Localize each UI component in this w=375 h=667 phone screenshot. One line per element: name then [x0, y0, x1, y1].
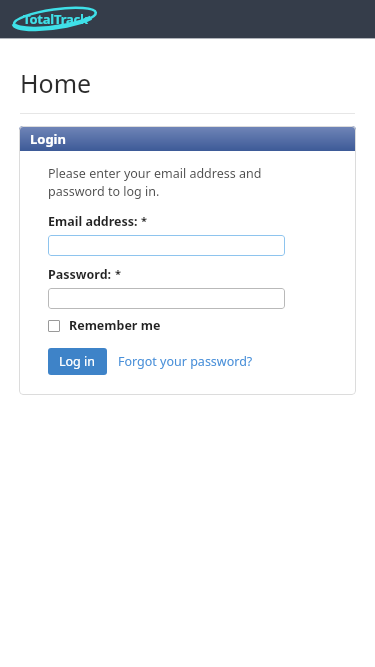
staticText: Home	[20, 66, 92, 100]
staticText: TotalTrack	[23, 10, 88, 28]
staticText: *	[141, 213, 147, 228]
staticText: Password:	[48, 266, 112, 283]
staticText: Remember me	[69, 317, 161, 334]
button[interactable]: TotalTrack home	[12, 3, 98, 35]
button[interactable]: Email address input	[48, 235, 285, 256]
button[interactable]: Log in	[48, 348, 107, 375]
staticText: Forgot your password?	[118, 353, 253, 370]
button[interactable]: Forgot your password?	[118, 349, 253, 374]
button[interactable]: Password input	[48, 288, 285, 309]
staticText: Login	[30, 130, 66, 148]
staticText: Email address:	[48, 213, 138, 230]
button[interactable]: Remember me	[48, 317, 161, 334]
staticText: *	[115, 266, 121, 281]
staticText: Log in	[59, 353, 96, 370]
staticText: Please enter your email address and pass…	[48, 165, 316, 200]
